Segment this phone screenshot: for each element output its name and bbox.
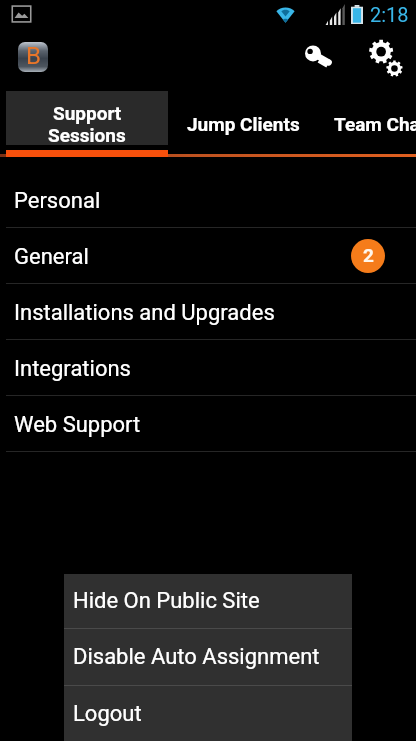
staticText: Jump Clients bbox=[187, 113, 300, 135]
staticText: Hide On Public Site bbox=[73, 588, 260, 614]
button[interactable]: Hide On Public Site bbox=[64, 574, 352, 628]
button[interactable]: Settings bbox=[362, 31, 414, 87]
staticText: Support bbox=[53, 102, 122, 124]
button[interactable]: Disable Auto Assignment bbox=[64, 629, 352, 685]
staticText: Team Chat bbox=[334, 113, 416, 135]
button[interactable]: Jump Clients bbox=[168, 91, 310, 157]
button[interactable]: Installations and Upgrades bbox=[0, 284, 416, 340]
button[interactable]: Logout bbox=[64, 686, 352, 741]
staticText: B bbox=[26, 42, 41, 70]
staticText: 2:18 bbox=[370, 3, 409, 26]
staticText: Disable Auto Assignment bbox=[73, 644, 320, 670]
button[interactable]: Personal bbox=[0, 172, 416, 228]
button[interactable]: Integrations bbox=[0, 340, 416, 396]
button[interactable]: Web Support bbox=[0, 396, 416, 452]
staticText: Installations and Upgrades bbox=[14, 300, 275, 326]
staticText: 2 bbox=[363, 244, 374, 266]
staticText: Sessions bbox=[48, 124, 126, 146]
button[interactable]: Vault credentials bbox=[296, 28, 343, 84]
staticText: Web Support bbox=[14, 412, 141, 438]
staticText: Personal bbox=[14, 188, 101, 214]
button[interactable]: Team Chat bbox=[310, 91, 416, 157]
button[interactable]: BeyondTrust bbox=[18, 42, 48, 72]
staticText: Integrations bbox=[14, 356, 131, 382]
staticText: General bbox=[14, 244, 89, 270]
staticText: Logout bbox=[73, 701, 142, 727]
button[interactable]: Support bbox=[6, 91, 168, 157]
button[interactable]: General bbox=[0, 228, 416, 284]
